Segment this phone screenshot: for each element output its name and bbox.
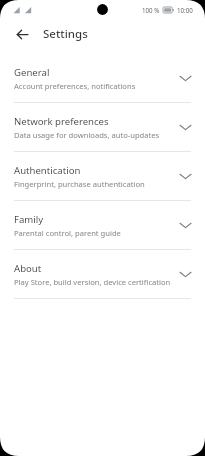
staticText: 10:00 [177,6,193,14]
staticText: Parental control, parent guide [14,228,121,238]
button[interactable]: General [0,54,205,102]
button[interactable]: Expand Authentication [175,166,195,186]
staticText: Play Store, build version, device certif… [14,277,171,287]
button[interactable]: Network preferences [0,103,205,151]
staticText: Account preferences, notifications [14,81,136,91]
button[interactable]: Back [10,22,34,46]
staticText: 100 % [142,6,160,14]
staticText: Data usage for downloads, auto-updates [14,130,160,140]
button[interactable]: Expand General [175,68,195,88]
staticText: About [14,262,42,275]
button[interactable]: Family [0,201,205,249]
button[interactable]: Authentication [0,152,205,200]
staticText: General [14,66,50,79]
staticText: Authentication [14,164,81,177]
staticText: Settings [43,26,88,42]
button[interactable]: Expand About [175,264,195,284]
button[interactable]: About [0,250,205,298]
button[interactable]: Expand Network preferences [175,117,195,137]
button[interactable]: Expand Family [175,215,195,235]
staticText: Family [14,213,44,226]
staticText: Network preferences [14,115,109,128]
staticText: Fingerprint, purchase authentication [14,179,145,189]
